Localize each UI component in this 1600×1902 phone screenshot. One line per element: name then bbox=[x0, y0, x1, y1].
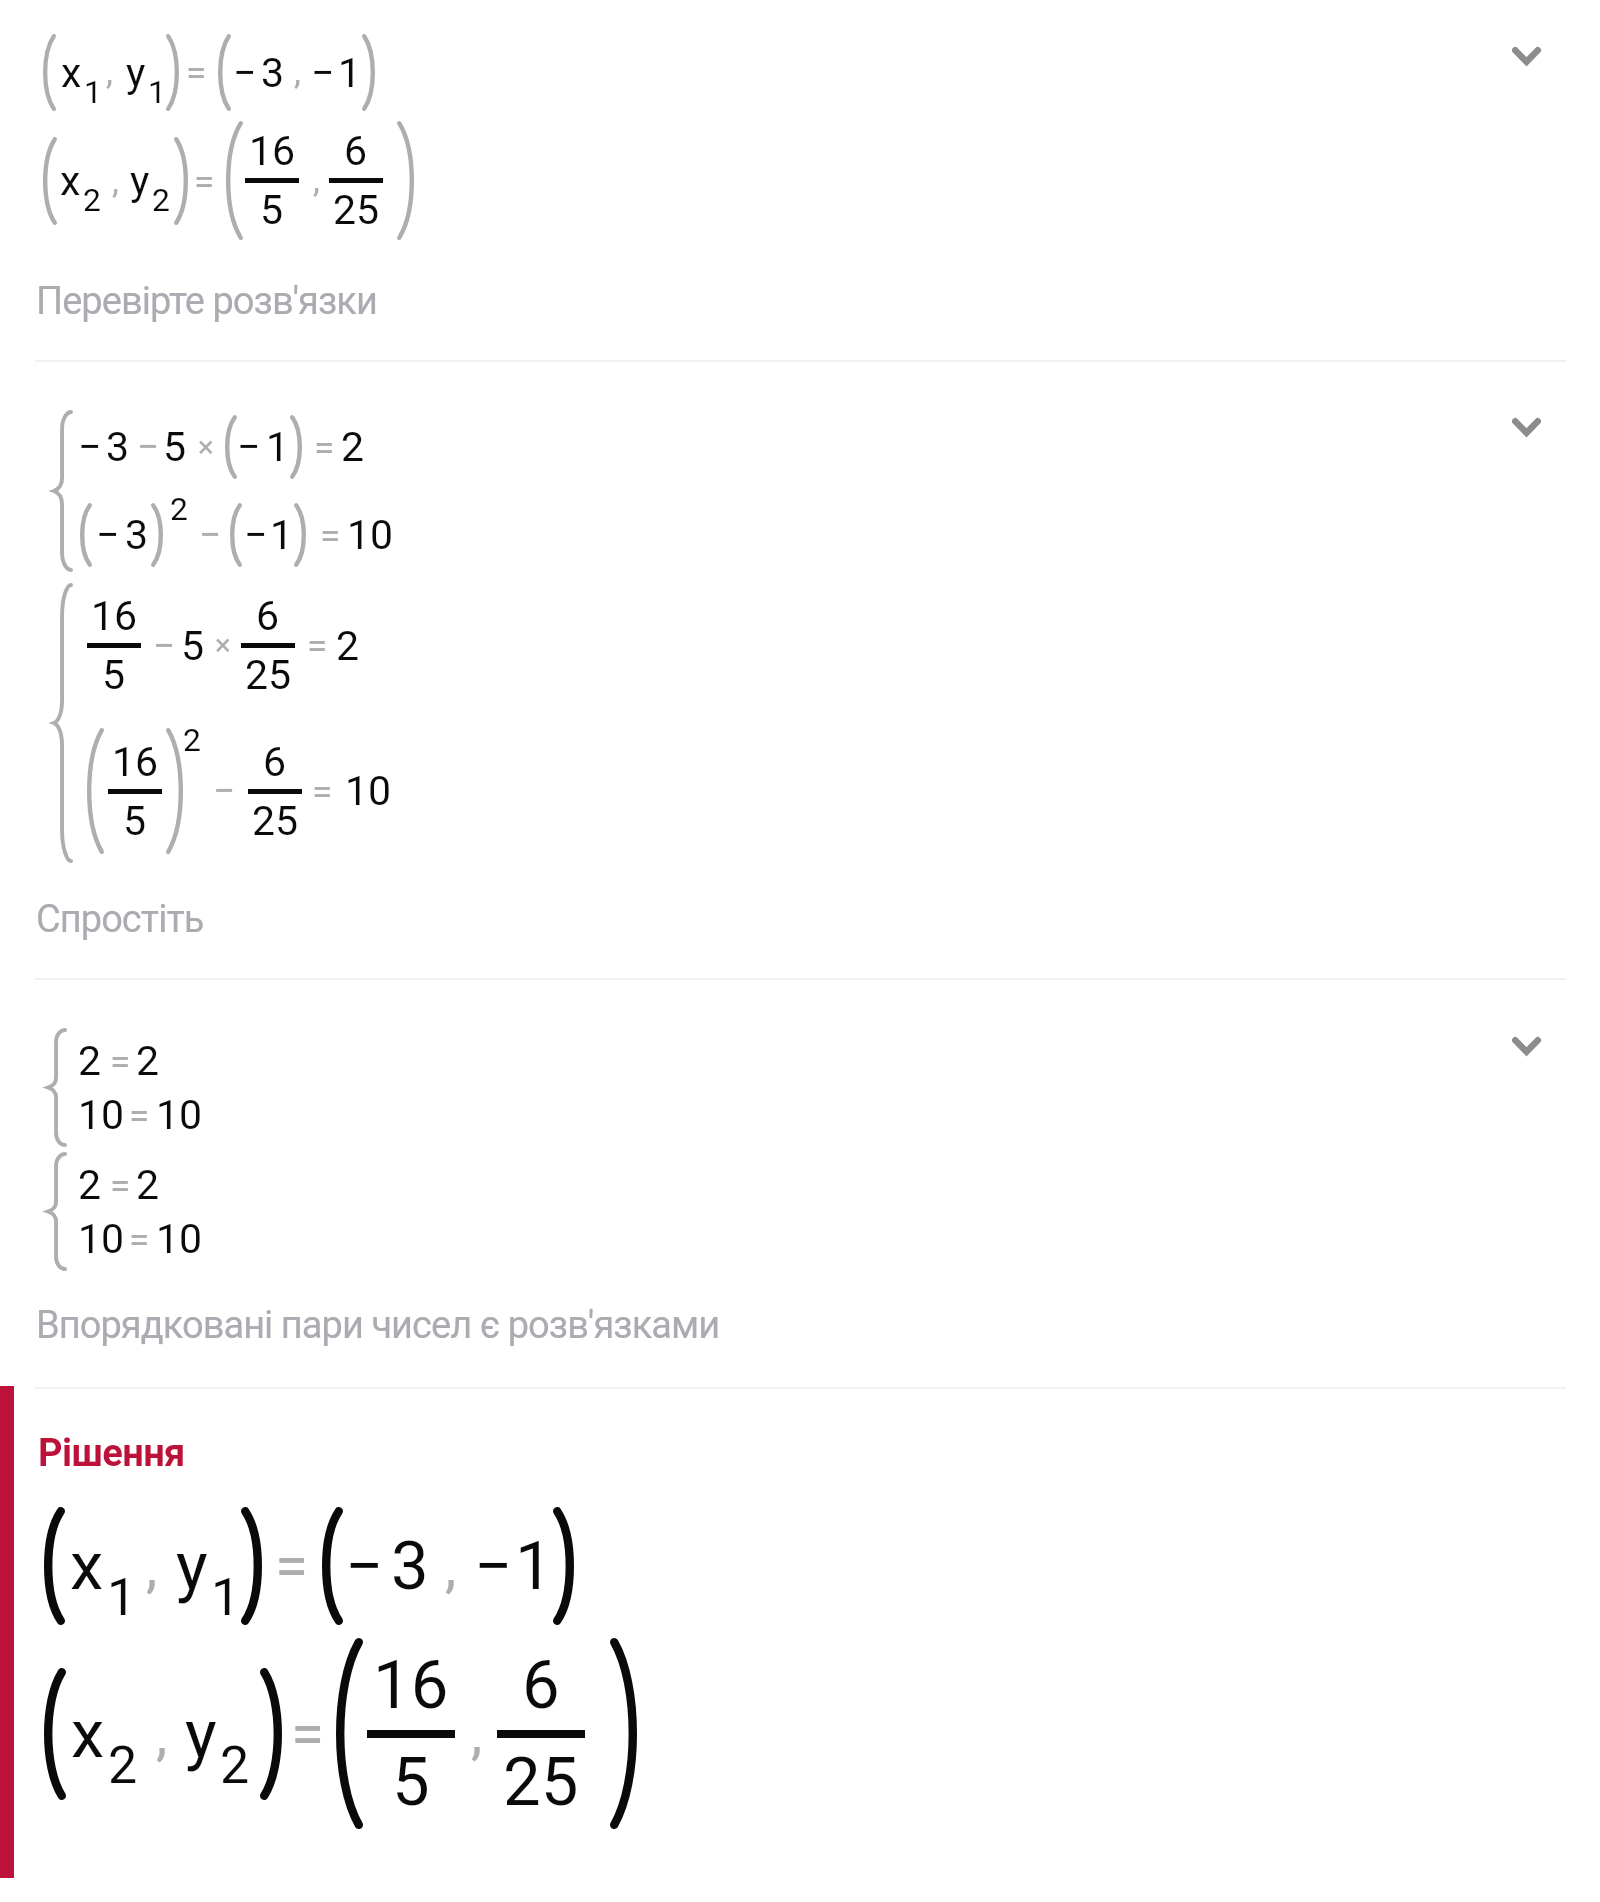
staticText: 2 bbox=[136, 1037, 160, 1085]
staticText: − bbox=[153, 623, 176, 669]
button[interactable]: Collapse step bbox=[1496, 26, 1557, 86]
staticText: 16 bbox=[249, 127, 296, 175]
staticText: y bbox=[126, 49, 146, 97]
staticText: 10 bbox=[347, 511, 394, 559]
staticText: × bbox=[215, 628, 231, 663]
staticText: = bbox=[312, 770, 333, 813]
staticText: 10 bbox=[78, 1215, 125, 1263]
staticText: y bbox=[185, 1695, 217, 1774]
staticText: , bbox=[106, 52, 113, 93]
staticText: − bbox=[137, 424, 160, 470]
staticText: = bbox=[110, 1040, 131, 1083]
staticText: 16 bbox=[91, 592, 138, 640]
staticText: x bbox=[70, 1527, 104, 1606]
staticText: 1 bbox=[148, 74, 166, 111]
staticText: , bbox=[156, 1701, 168, 1768]
staticText: − bbox=[345, 1527, 384, 1606]
staticText: − bbox=[213, 768, 236, 814]
staticText: 6 bbox=[256, 592, 280, 640]
staticText: 6 bbox=[522, 1646, 560, 1725]
staticText: x bbox=[60, 157, 81, 205]
staticText: 6 bbox=[344, 127, 368, 175]
staticText: 10 bbox=[156, 1215, 203, 1263]
staticText: 5 bbox=[163, 423, 187, 471]
staticText: = bbox=[129, 1094, 150, 1137]
staticText: × bbox=[198, 430, 214, 465]
staticText: Перевірте розв'язки bbox=[36, 279, 377, 324]
staticText: 2 bbox=[336, 622, 360, 670]
staticText: , bbox=[313, 160, 320, 201]
staticText: − bbox=[199, 512, 222, 558]
button[interactable]: Collapse step bbox=[1496, 1016, 1557, 1076]
staticText: 25 bbox=[252, 797, 299, 845]
staticText: 2 bbox=[108, 1735, 138, 1796]
staticText: , bbox=[294, 52, 301, 93]
staticText: 5 bbox=[260, 186, 284, 234]
staticText: 10 bbox=[156, 1091, 203, 1139]
staticText: = bbox=[291, 1699, 325, 1770]
button[interactable]: Рішення bbox=[0, 1389, 1600, 1881]
staticText: 5 bbox=[181, 622, 205, 670]
staticText: 2 bbox=[220, 1735, 250, 1796]
staticText: − bbox=[78, 423, 102, 471]
staticText: Рішення bbox=[38, 1431, 185, 1476]
staticText: 5 bbox=[102, 651, 126, 699]
staticText: = bbox=[186, 51, 207, 94]
staticText: 16 bbox=[112, 738, 159, 786]
staticText: = bbox=[275, 1531, 309, 1602]
staticText: = bbox=[110, 1164, 131, 1207]
staticText: 1 bbox=[515, 1527, 553, 1606]
staticText: 25 bbox=[333, 186, 380, 234]
staticText: 2 bbox=[78, 1037, 102, 1085]
button[interactable]: Перевірте розв'язки bbox=[0, 0, 1600, 360]
staticText: − bbox=[233, 49, 257, 97]
staticText: y bbox=[176, 1527, 208, 1606]
staticText: 2 bbox=[83, 182, 101, 219]
staticText: 2 bbox=[183, 722, 201, 759]
staticText: 10 bbox=[345, 767, 392, 815]
staticText: 2 bbox=[136, 1161, 160, 1209]
staticText: 3 bbox=[106, 423, 130, 471]
staticText: x bbox=[61, 49, 82, 97]
staticText: , bbox=[445, 1533, 457, 1600]
staticText: 3 bbox=[391, 1527, 429, 1606]
staticText: 3 bbox=[261, 49, 285, 97]
staticText: = bbox=[129, 1218, 150, 1261]
staticText: y bbox=[130, 157, 150, 205]
staticText: 1 bbox=[211, 1567, 241, 1628]
staticText: , bbox=[471, 1700, 483, 1767]
button[interactable]: Спростіть bbox=[0, 362, 1600, 978]
staticText: 5 bbox=[392, 1743, 430, 1822]
staticText: 2 bbox=[78, 1161, 102, 1209]
staticText: 1 bbox=[107, 1567, 137, 1628]
staticText: , bbox=[112, 161, 119, 202]
staticText: = bbox=[194, 160, 215, 203]
staticText: − bbox=[237, 423, 261, 471]
staticText: Впорядковані пари чисел є розв'язками bbox=[36, 1303, 720, 1348]
staticText: 25 bbox=[245, 651, 292, 699]
staticText: = bbox=[314, 426, 335, 469]
staticText: 1 bbox=[84, 74, 102, 111]
staticText: 2 bbox=[170, 491, 188, 528]
staticText: 25 bbox=[503, 1743, 579, 1822]
staticText: 1 bbox=[270, 511, 294, 559]
staticText: − bbox=[244, 511, 268, 559]
staticText: x bbox=[71, 1695, 105, 1774]
staticText: , bbox=[146, 1533, 158, 1600]
staticText: 16 bbox=[373, 1646, 449, 1725]
staticText: 2 bbox=[152, 182, 170, 219]
staticText: 3 bbox=[125, 511, 149, 559]
staticText: 6 bbox=[263, 738, 287, 786]
staticText: − bbox=[96, 511, 120, 559]
staticText: 10 bbox=[78, 1091, 125, 1139]
button[interactable]: Collapse step bbox=[1496, 397, 1557, 457]
staticText: − bbox=[311, 49, 335, 97]
staticText: 1 bbox=[338, 49, 362, 97]
staticText: 1 bbox=[266, 423, 290, 471]
staticText: Спростіть bbox=[36, 897, 204, 942]
staticText: − bbox=[474, 1527, 513, 1606]
button[interactable]: Впорядковані пари чисел є розв'язками bbox=[0, 980, 1600, 1387]
staticText: = bbox=[307, 624, 328, 667]
staticText: 5 bbox=[123, 797, 147, 845]
staticText: 2 bbox=[341, 423, 365, 471]
